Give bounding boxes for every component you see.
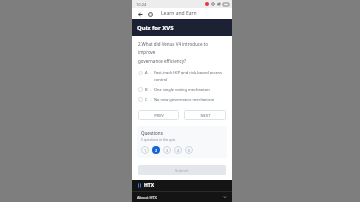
button[interactable]: B (138, 87, 226, 92)
staticText: 4 (177, 148, 180, 153)
staticText: NEXT (200, 113, 211, 118)
staticText: Submit (175, 168, 189, 173)
staticText: . (150, 87, 152, 92)
staticText: About HTX (137, 195, 157, 200)
staticText: . (150, 97, 152, 102)
staticText: 2.What did Venus V4 introduce to improve (138, 41, 226, 56)
button[interactable]: 1 (141, 146, 149, 154)
staticText: 5 (188, 148, 191, 153)
button[interactable]: PREV (138, 110, 179, 120)
staticText: 1 (144, 148, 147, 153)
button[interactable]: 4 (174, 146, 182, 154)
staticText: . (150, 70, 152, 75)
button[interactable]: NEXT (184, 110, 226, 120)
button[interactable]: About HTX (137, 192, 227, 202)
button[interactable]: Back (136, 10, 144, 18)
button[interactable]: 3 (163, 146, 171, 154)
button[interactable]: 2 (152, 146, 160, 154)
button[interactable]: Submit (138, 165, 226, 175)
other: Expand (223, 195, 227, 199)
button[interactable]: 5 (185, 146, 193, 154)
staticText: 5 questions in this quiz (141, 138, 176, 142)
staticText: 2 (155, 148, 158, 153)
button[interactable]: A (138, 70, 226, 82)
staticText: A (145, 70, 148, 75)
staticText: Quiz for XVS (137, 24, 174, 32)
button[interactable]: C (138, 97, 226, 102)
staticText: C (145, 97, 148, 102)
staticText: No new governance mechanism (154, 97, 215, 102)
staticText: HTX (144, 182, 155, 189)
staticText: 10:24 (136, 2, 147, 7)
staticText: governance efficiency? (138, 58, 186, 64)
staticText: PREV (154, 113, 164, 118)
staticText: Questions (141, 130, 163, 136)
button[interactable]: Home (146, 10, 154, 18)
staticText: 3 (166, 148, 169, 153)
staticText: One single voting mechanism (154, 87, 210, 92)
staticText: Learn and Earn (161, 10, 197, 17)
staticText: Fast-track HIP and risk-based access con… (154, 70, 222, 82)
staticText: B (145, 87, 148, 92)
